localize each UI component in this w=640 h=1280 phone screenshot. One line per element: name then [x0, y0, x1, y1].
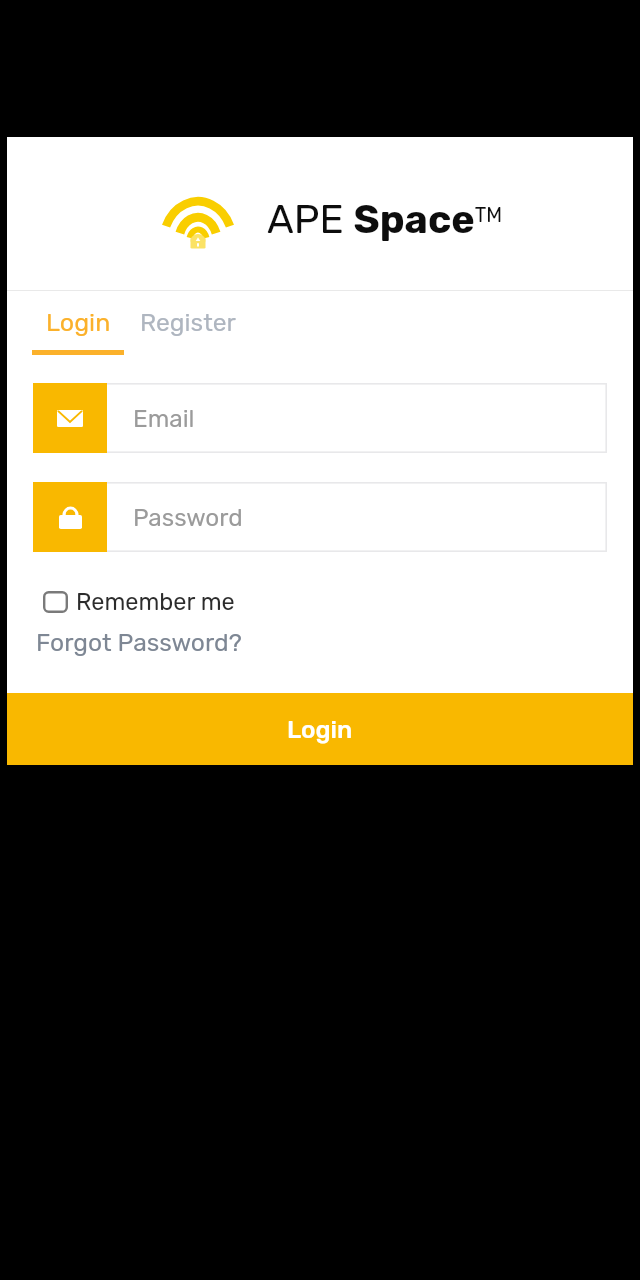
other: Remember me checkbox: [43, 591, 68, 613]
staticText: Forgot Password?: [36, 628, 242, 657]
button[interactable]: Forgot Password?: [31, 624, 247, 661]
staticText: Remember me: [76, 588, 235, 616]
staticText: Password: [133, 503, 243, 532]
button[interactable]: Register: [132, 306, 244, 350]
other: Email: [57, 410, 83, 427]
button[interactable]: Email: [33, 383, 607, 453]
staticText: Email: [133, 404, 195, 433]
staticText: Login: [287, 715, 353, 744]
staticText: APE SpaceTM: [267, 196, 503, 243]
staticText: Register: [140, 308, 236, 337]
other: APE Space logo: [162, 193, 234, 253]
button[interactable]: Login: [7, 693, 633, 765]
button[interactable]: Password: [33, 482, 607, 552]
button[interactable]: Login: [32, 305, 124, 356]
button[interactable]: Remember me checkbox: [35, 584, 241, 620]
other: Password: [59, 505, 82, 529]
staticText: Login: [46, 308, 111, 338]
